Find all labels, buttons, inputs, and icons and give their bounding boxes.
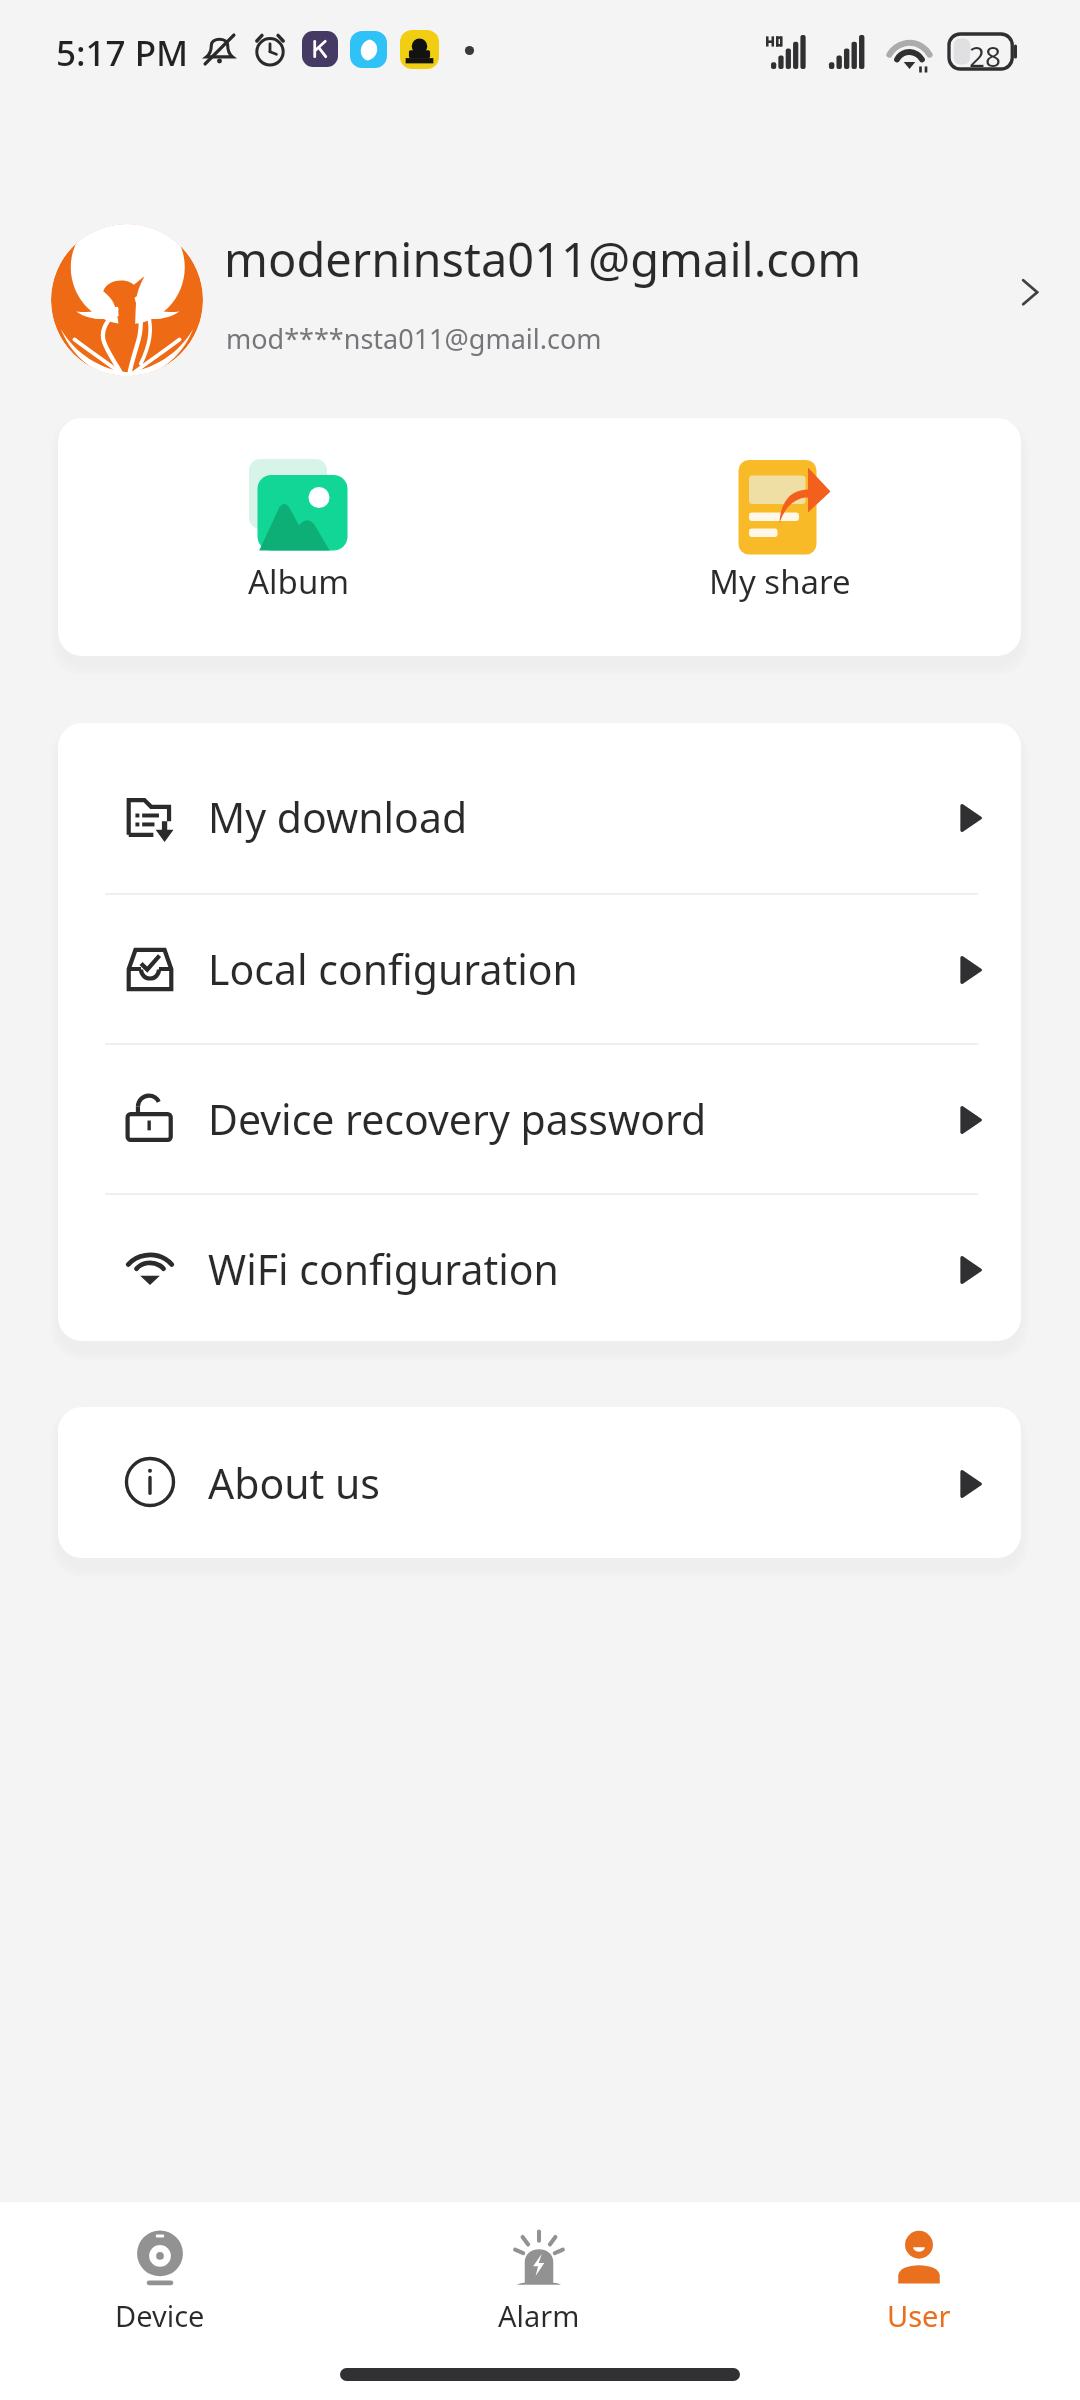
staticText: Alarm — [498, 2296, 580, 2335]
staticText: Local configuration — [208, 941, 578, 997]
staticText: WiFi configuration — [208, 1241, 559, 1297]
button[interactable]: Alarm — [409, 2228, 669, 2356]
button[interactable]: My download — [58, 723, 1021, 893]
button[interactable]: Local configuration — [58, 895, 1021, 1043]
staticText: 5:17 PM — [56, 29, 189, 77]
staticText: mod****nsta011@gmail.com — [226, 320, 602, 357]
button[interactable]: User — [789, 2228, 1049, 2356]
staticText: 28 — [969, 37, 1002, 75]
staticText: Device — [115, 2296, 205, 2335]
button[interactable]: moderninsta011@gmail.com — [0, 215, 1080, 380]
staticText: Album — [248, 559, 350, 604]
staticText: About us — [208, 1455, 380, 1511]
button[interactable]: Device recovery password — [58, 1045, 1021, 1193]
button[interactable]: Album — [58, 418, 539, 656]
staticText: moderninsta011@gmail.com — [224, 227, 862, 291]
staticText: My share — [709, 559, 851, 604]
staticText: User — [887, 2296, 951, 2335]
button[interactable]: My share — [539, 418, 1021, 656]
button[interactable]: About us — [58, 1407, 1021, 1558]
button[interactable]: Device — [30, 2228, 290, 2356]
staticText: My download — [208, 789, 468, 845]
staticText: Device recovery password — [208, 1091, 707, 1147]
button[interactable]: WiFi configuration — [58, 1195, 1021, 1341]
